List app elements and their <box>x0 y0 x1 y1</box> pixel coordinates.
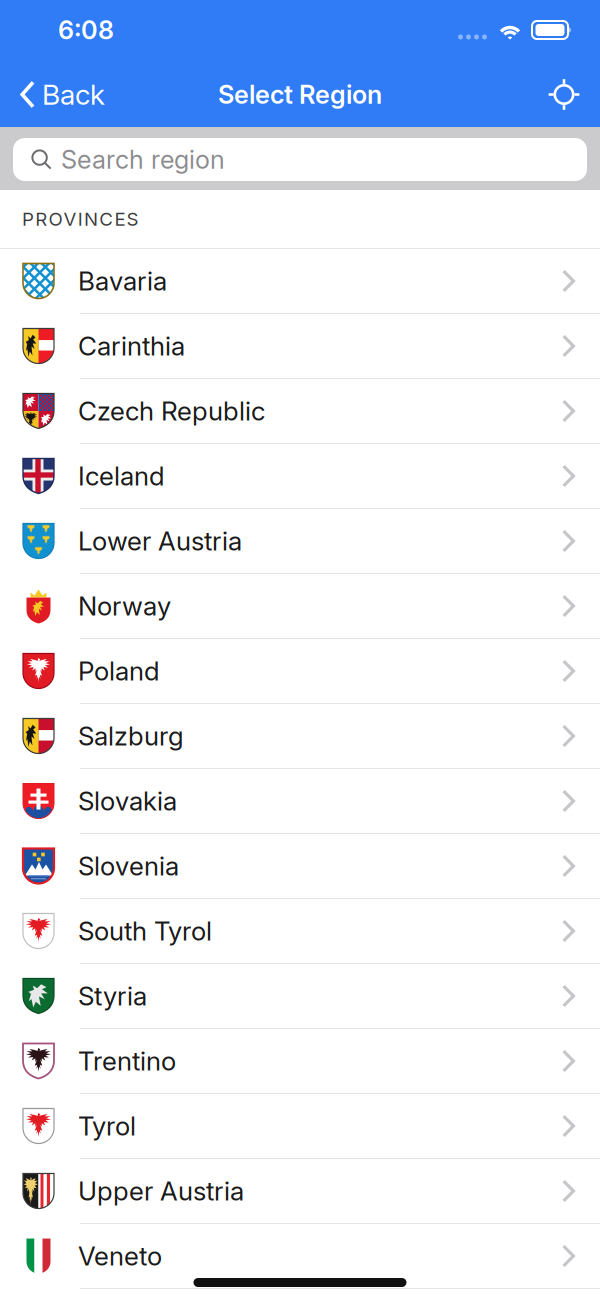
staticText: Veneto <box>78 1240 162 1272</box>
staticText: N <box>84 208 98 230</box>
button[interactable]: Salzburg <box>0 704 600 769</box>
staticText: Norway <box>78 590 171 622</box>
button[interactable]: Poland <box>0 639 600 704</box>
staticText: Slovenia <box>78 850 179 882</box>
staticText: R <box>35 208 47 230</box>
button[interactable]: Lower Austria <box>0 509 600 574</box>
staticText: Back <box>42 78 105 111</box>
staticText: Tyrol <box>78 1110 136 1142</box>
button[interactable]: Norway <box>0 574 600 639</box>
button[interactable]: Carinthia <box>0 314 600 379</box>
button[interactable]: Veneto <box>0 1224 600 1289</box>
button[interactable]: Search region <box>13 138 587 181</box>
button[interactable]: Slovenia <box>0 834 600 899</box>
button[interactable]: Upper Austria <box>0 1159 600 1224</box>
staticText: Poland <box>78 655 160 687</box>
staticText: South Tyrol <box>78 915 212 947</box>
button[interactable]: Bavaria <box>0 249 600 314</box>
button[interactable]: Czech Republic <box>0 379 600 444</box>
staticText: Iceland <box>78 460 165 492</box>
button[interactable]: Trentino <box>0 1029 600 1094</box>
staticText: Bavaria <box>78 265 167 297</box>
staticText: Carinthia <box>78 330 185 362</box>
staticText: Search region <box>61 144 225 175</box>
staticText: Trentino <box>78 1045 176 1077</box>
staticText: Lower Austria <box>78 525 242 557</box>
staticText: O <box>48 208 62 230</box>
button[interactable]: South Tyrol <box>0 899 600 964</box>
staticText: V <box>64 208 77 230</box>
button[interactable]: Locate me <box>534 66 594 122</box>
staticText: Salzburg <box>78 720 184 752</box>
staticText: E <box>114 208 125 230</box>
staticText: Styria <box>78 980 147 1012</box>
staticText: 6:08 <box>58 15 114 45</box>
button[interactable]: Iceland <box>0 444 600 509</box>
button[interactable]: Tyrol <box>0 1094 600 1159</box>
button[interactable]: Styria <box>0 964 600 1029</box>
button[interactable]: Back <box>6 66 119 122</box>
staticText: I <box>78 208 83 230</box>
staticText: P <box>22 208 34 230</box>
button[interactable]: Slovakia <box>0 769 600 834</box>
staticText: C <box>99 208 113 230</box>
staticText: Upper Austria <box>78 1175 244 1207</box>
staticText: S <box>127 208 139 230</box>
staticText: Select Region <box>218 79 382 110</box>
staticText: Czech Republic <box>78 395 265 427</box>
staticText: Slovakia <box>78 785 177 817</box>
